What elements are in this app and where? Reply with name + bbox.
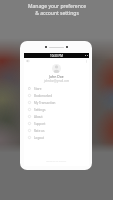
staticText: Settings [34, 108, 46, 112]
staticText: Rate us [34, 129, 45, 133]
button[interactable]: Store [24, 85, 89, 92]
staticText: Support [34, 122, 46, 126]
staticText: John Doe [49, 74, 64, 79]
staticText: About [34, 115, 43, 119]
staticText: Bookmarked [34, 94, 53, 98]
staticText: My Transaction [34, 101, 56, 105]
button[interactable]: Bookmarked [24, 92, 89, 99]
button[interactable]: Back [26, 59, 30, 63]
button[interactable]: About [24, 113, 89, 120]
staticText: designed by freepik [46, 160, 67, 163]
button[interactable]: Rate us [24, 127, 89, 134]
staticText: Manage your preference [28, 3, 86, 10]
button[interactable]: Settings [24, 106, 89, 113]
staticText: johndoe@gmail.com [44, 79, 70, 83]
staticText: Store [34, 87, 42, 91]
button[interactable]: More options [85, 60, 88, 63]
staticText: Logout [34, 136, 44, 140]
staticText: 10:30 PM [50, 54, 63, 58]
staticText: & account settings [35, 10, 79, 17]
button[interactable]: Support [24, 120, 89, 127]
button[interactable]: Logout [24, 134, 89, 141]
button[interactable]: My Transaction [24, 99, 89, 106]
